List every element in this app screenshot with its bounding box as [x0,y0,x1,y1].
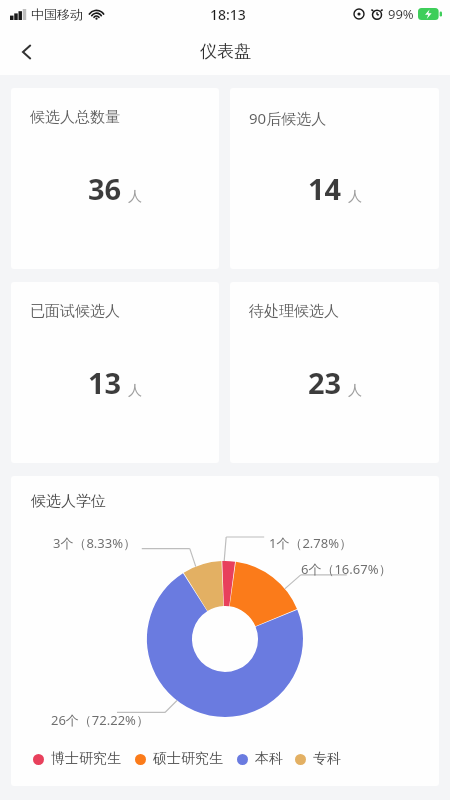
staticText: 36 [88,169,122,208]
button[interactable]: 待处理候选人 [230,282,439,463]
button[interactable]: 候选人总数量 [11,88,219,269]
staticText: 23 [308,363,342,402]
staticText: 人 [128,382,142,400]
staticText: 3个（8.33%） [53,534,137,552]
staticText: 候选人学位 [31,492,106,511]
staticText: 仪表盘 [200,41,251,62]
button[interactable]: 专科 [295,750,341,768]
staticText: 已面试候选人 [30,302,120,321]
staticText: 中国移动 [31,6,83,22]
staticText: 90后候选人 [249,108,327,128]
staticText: 26个（72.22%） [51,711,149,729]
staticText: 硕士研究生 [153,750,223,768]
staticText: 18:13 [210,5,246,24]
staticText: 人 [128,188,142,206]
staticText: 本科 [255,750,283,768]
staticText: 13 [88,363,122,402]
button[interactable]: 90后候选人 [230,88,439,269]
button[interactable]: Back [0,28,54,75]
button[interactable]: 已面试候选人 [11,282,219,463]
staticText: 人 [348,188,362,206]
staticText: 14 [308,169,342,208]
staticText: 1个（2.78%） [269,534,353,552]
staticText: 6个（16.67%） [301,560,392,578]
staticText: 博士研究生 [51,750,121,768]
staticText: 人 [348,382,362,400]
button[interactable]: 博士研究生 [33,750,121,768]
button[interactable]: 本科 [237,750,283,768]
staticText: 专科 [313,750,341,768]
staticText: 99% [388,5,414,23]
staticText: 候选人总数量 [30,108,120,127]
button[interactable]: 硕士研究生 [135,750,223,768]
staticText: 待处理候选人 [249,302,339,321]
